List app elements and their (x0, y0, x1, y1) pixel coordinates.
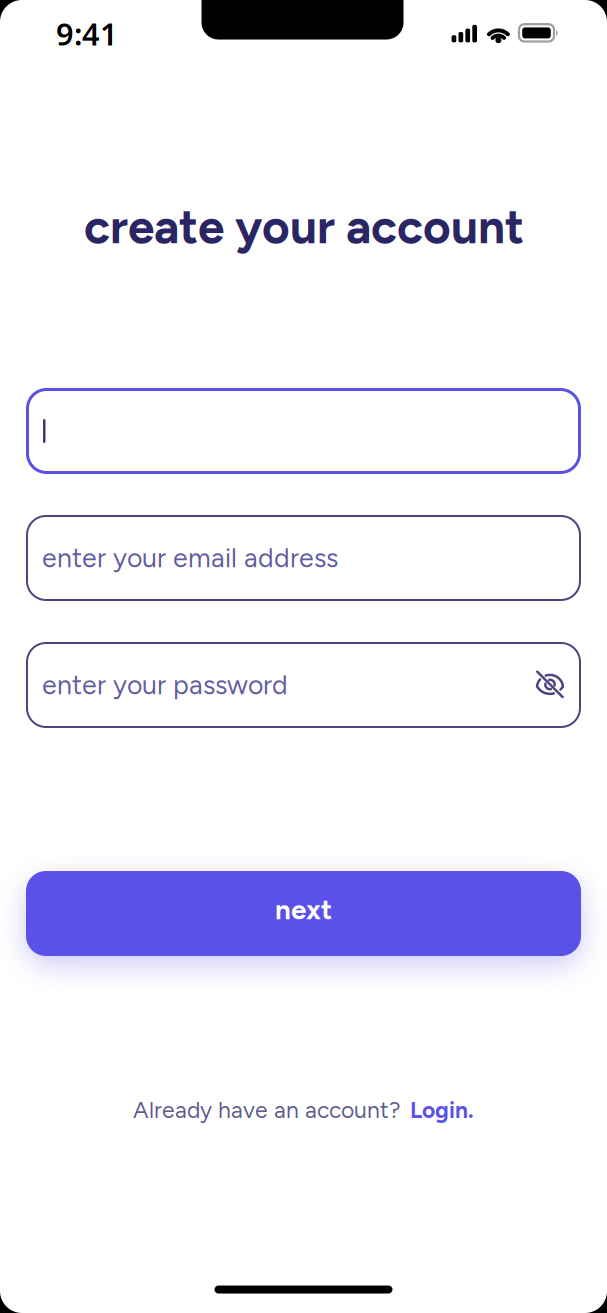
staticText: enter your email address (42, 542, 338, 574)
button[interactable]: enter your email address (26, 515, 581, 601)
staticText: next (275, 893, 332, 926)
button[interactable]: Show password (528, 662, 572, 706)
staticText: create your account (84, 198, 524, 255)
staticText: enter your password (42, 669, 288, 701)
staticText: 9:41 (56, 13, 118, 54)
staticText: Already have an account? (133, 1096, 401, 1124)
button[interactable]: Login. (410, 1096, 474, 1124)
staticText: Login. (410, 1096, 474, 1124)
button[interactable]: next (26, 871, 581, 956)
button[interactable]: enter your name (26, 388, 581, 474)
button[interactable]: enter your password (26, 642, 581, 728)
